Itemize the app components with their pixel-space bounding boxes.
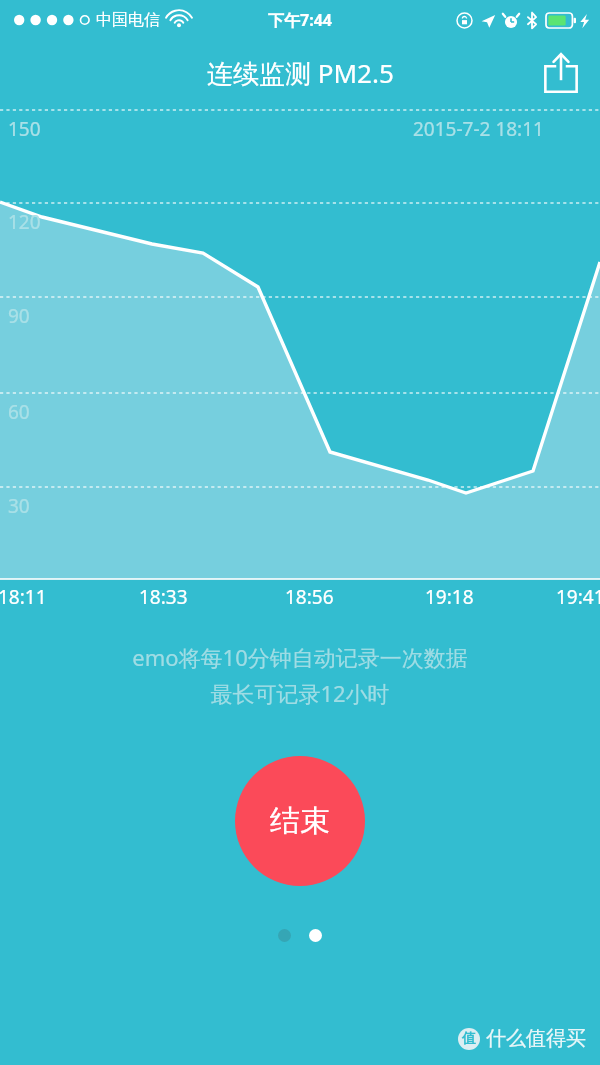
staticText: 连续监测 PM2.5 bbox=[207, 55, 394, 91]
staticText: emo将每10分钟自动记录一次数据 bbox=[132, 642, 468, 672]
staticText: 120 bbox=[8, 209, 41, 235]
staticText: 90 bbox=[8, 303, 30, 329]
staticText: 19:18 bbox=[425, 584, 474, 610]
staticText: 下午7:44 bbox=[268, 9, 332, 31]
staticText: 18:33 bbox=[139, 584, 188, 610]
staticText: 30 bbox=[8, 493, 30, 519]
staticText: 值 bbox=[462, 1030, 476, 1048]
staticText: 结束 bbox=[270, 802, 330, 840]
staticText: 最长可记录12小时 bbox=[210, 678, 390, 708]
button[interactable]: Share bbox=[534, 46, 588, 100]
button[interactable]: Page 2 bbox=[309, 929, 322, 942]
button[interactable]: 结束 bbox=[235, 756, 365, 886]
staticText: 2015-7-2 18:11 bbox=[413, 116, 544, 142]
staticText: 19:41 bbox=[556, 584, 600, 610]
staticText: 18:56 bbox=[285, 584, 334, 610]
staticText: 什么值得买 bbox=[486, 1026, 586, 1051]
staticText: 150 bbox=[8, 116, 41, 142]
staticText: 60 bbox=[8, 399, 30, 425]
staticText: 18:11 bbox=[0, 584, 47, 610]
staticText: 中国电信 bbox=[96, 10, 160, 30]
button[interactable]: Page 1 bbox=[278, 929, 291, 942]
